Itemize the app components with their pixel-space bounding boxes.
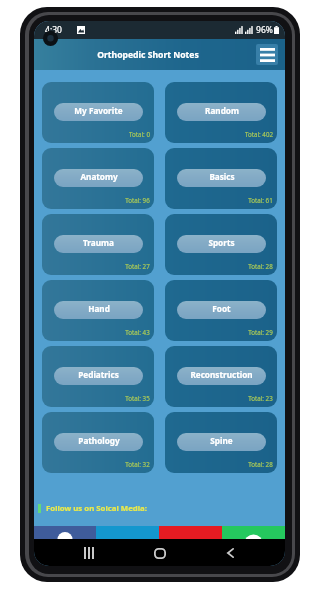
- staticText: Reconstruction: [190, 369, 253, 380]
- staticText: Trauma: [83, 237, 114, 248]
- staticText: Pathology: [78, 435, 120, 446]
- staticText: 96%: [256, 24, 273, 36]
- button[interactable]: Home: [152, 545, 168, 561]
- staticText: Total: 28: [248, 262, 273, 270]
- button[interactable]: My Favorite: [42, 82, 154, 143]
- staticText: Total: 28: [248, 460, 273, 468]
- button[interactable]: Hand: [42, 280, 154, 341]
- staticText: Hand: [88, 303, 110, 314]
- button[interactable]: Foot: [165, 280, 277, 341]
- staticText: Total: 35: [125, 394, 150, 402]
- staticText: Sports: [208, 237, 235, 248]
- staticText: Total: 27: [125, 262, 150, 270]
- staticText: Anatomy: [80, 171, 118, 182]
- staticText: Pediatrics: [78, 369, 119, 380]
- button[interactable]: Facebook: [34, 526, 96, 539]
- button[interactable]: Sports: [165, 214, 277, 275]
- button[interactable]: Recents: [81, 545, 97, 561]
- staticText: Spine: [210, 435, 233, 446]
- button[interactable]: Spine: [165, 412, 277, 473]
- button[interactable]: Trauma: [42, 214, 154, 275]
- button[interactable]: WhatsApp: [222, 526, 285, 539]
- staticText: Total: 23: [248, 394, 273, 402]
- staticText: Follow us on Soical Media:: [46, 503, 147, 514]
- staticText: Total: 43: [125, 328, 150, 336]
- staticText: 4:30: [45, 24, 62, 36]
- button[interactable]: Pediatrics: [42, 346, 154, 407]
- button[interactable]: Reconstruction: [165, 346, 277, 407]
- staticText: My Favorite: [74, 105, 123, 116]
- button[interactable]: Menu: [256, 44, 278, 65]
- staticText: Total: 402: [245, 130, 273, 138]
- staticText: Total: 96: [125, 196, 150, 204]
- staticText: Total: 29: [248, 328, 273, 336]
- staticText: Foot: [212, 303, 231, 314]
- staticText: Random: [205, 105, 239, 116]
- button[interactable]: Pathology: [42, 412, 154, 473]
- staticText: Basics: [209, 171, 235, 182]
- staticText: Orthopedic Short Notes: [97, 49, 199, 61]
- staticText: Total: 61: [248, 196, 273, 204]
- staticText: Total: 0: [129, 130, 150, 138]
- button[interactable]: Back: [222, 545, 238, 561]
- button[interactable]: Anatomy: [42, 148, 154, 209]
- staticText: Total: 32: [125, 460, 150, 468]
- button[interactable]: Basics: [165, 148, 277, 209]
- button[interactable]: Random: [165, 82, 277, 143]
